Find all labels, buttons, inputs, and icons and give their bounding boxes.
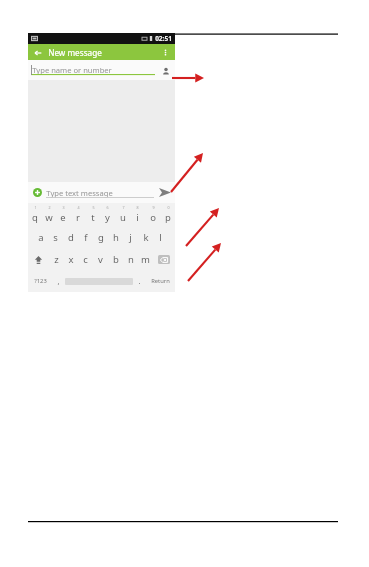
staticText: f <box>84 231 88 244</box>
staticText: i <box>136 211 139 224</box>
staticText: 9 <box>152 205 155 210</box>
staticText: a <box>38 231 44 244</box>
button[interactable]: a <box>34 226 48 248</box>
button[interactable]: ?123 <box>28 270 52 292</box>
staticText: t <box>91 211 95 224</box>
staticText: d <box>68 231 74 244</box>
button[interactable]: m <box>138 248 153 270</box>
staticText: l <box>159 231 162 244</box>
staticText: 2 <box>48 205 51 210</box>
button[interactable]: Back <box>31 46 44 59</box>
button[interactable]: Add contact <box>159 64 172 77</box>
button[interactable]: 0 <box>160 203 175 226</box>
button[interactable]: Add attachment <box>31 186 44 199</box>
button[interactable]: d <box>63 226 78 248</box>
button[interactable]: 9 <box>145 203 160 226</box>
button[interactable]: k <box>138 226 153 248</box>
button[interactable]: . <box>133 270 146 292</box>
staticText: j <box>129 231 132 244</box>
button[interactable]: , <box>52 270 65 292</box>
staticText: g <box>98 231 104 244</box>
staticText: p <box>165 211 171 224</box>
button[interactable]: Backspace <box>153 248 175 270</box>
button[interactable]: 8 <box>130 203 145 226</box>
button[interactable]: z <box>49 248 63 270</box>
staticText: 5 <box>92 205 95 210</box>
button[interactable]: x <box>63 248 78 270</box>
staticText: o <box>150 211 156 224</box>
staticText: Type name or number <box>32 65 112 75</box>
staticText: 8 <box>136 205 139 210</box>
button[interactable]: More options <box>159 46 172 59</box>
button[interactable]: Space <box>65 270 133 292</box>
button[interactable]: 6 <box>100 203 115 226</box>
staticText: c <box>83 253 88 266</box>
staticText: z <box>54 253 59 266</box>
button[interactable]: j <box>123 226 138 248</box>
staticText: y <box>105 211 110 224</box>
button[interactable]: Send <box>157 185 172 200</box>
button[interactable]: h <box>108 226 123 248</box>
staticText: h <box>113 231 119 244</box>
button[interactable]: g <box>93 226 108 248</box>
button[interactable]: 2 <box>42 203 56 226</box>
button[interactable]: 4 <box>70 203 85 226</box>
staticText: r <box>76 211 80 224</box>
staticText: Return <box>151 277 170 285</box>
staticText: w <box>45 211 53 224</box>
button[interactable]: Return <box>146 270 175 292</box>
button[interactable]: 5 <box>85 203 100 226</box>
staticText: q <box>32 211 38 224</box>
staticText: New message <box>48 47 102 58</box>
button[interactable]: f <box>78 226 93 248</box>
button[interactable]: c <box>78 248 93 270</box>
button[interactable]: 3 <box>56 203 70 226</box>
staticText: u <box>120 211 126 224</box>
staticText: ?123 <box>34 277 47 285</box>
staticText: x <box>68 253 74 266</box>
button[interactable]: l <box>153 226 168 248</box>
button[interactable]: 7 <box>115 203 130 226</box>
button[interactable]: v <box>93 248 108 270</box>
staticText: n <box>128 253 134 266</box>
staticText: m <box>141 253 150 266</box>
staticText: Type text message <box>46 188 113 198</box>
staticText: . <box>138 276 141 286</box>
button[interactable]: Type text message <box>46 188 154 198</box>
staticText: k <box>143 231 149 244</box>
button[interactable]: Shift <box>28 248 49 270</box>
staticText: s <box>53 231 58 244</box>
staticText: 7 <box>122 205 125 210</box>
button[interactable]: n <box>123 248 138 270</box>
button[interactable]: 1 <box>28 203 42 226</box>
button[interactable]: s <box>48 226 63 248</box>
staticText: v <box>98 253 103 266</box>
staticText: , <box>57 276 60 286</box>
staticText: b <box>113 253 119 266</box>
staticText: 0 <box>167 205 170 210</box>
button[interactable]: b <box>108 248 123 270</box>
staticText: 6 <box>106 205 109 210</box>
staticText: e <box>60 211 66 224</box>
staticText: 02:51 <box>155 34 172 43</box>
button[interactable]: Type name or number <box>28 60 175 80</box>
staticText: 3 <box>62 205 65 210</box>
staticText: 4 <box>77 205 80 210</box>
staticText: 1 <box>34 205 37 210</box>
